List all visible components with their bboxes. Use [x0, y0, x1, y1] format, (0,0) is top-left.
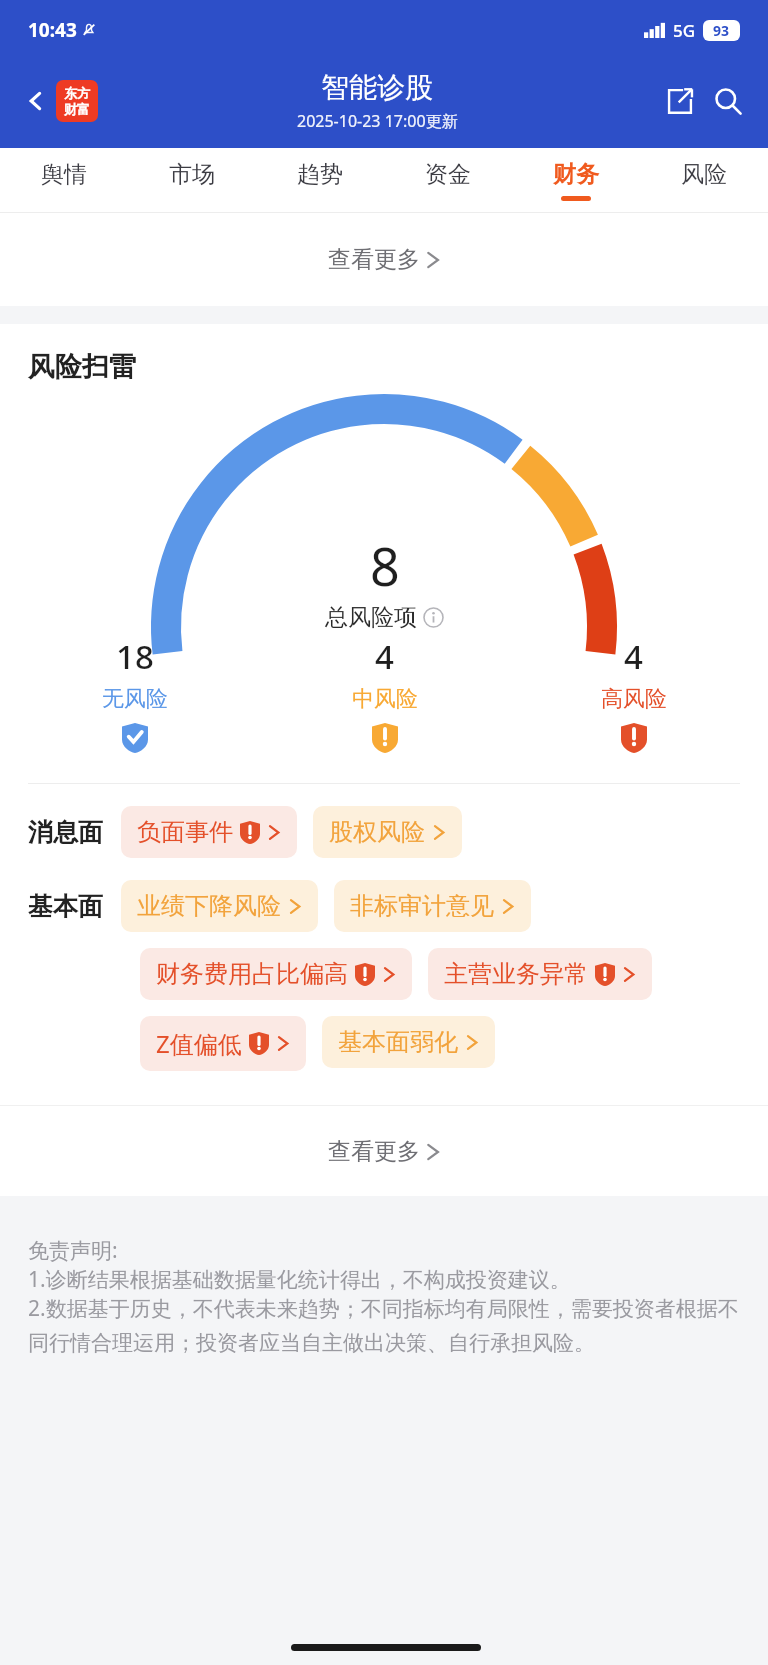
staticText: 主营业务异常 — [444, 959, 588, 989]
staticText: Z值偏低 — [156, 1027, 242, 1060]
staticText: 查看更多 — [328, 1137, 420, 1166]
staticText: 基本面 — [28, 891, 103, 922]
button[interactable]: 财务 — [512, 148, 640, 212]
staticText: 资金 — [425, 160, 471, 189]
button[interactable]: Search — [704, 77, 752, 125]
staticText: 财务 — [553, 160, 599, 189]
staticText: 10:43 — [28, 17, 77, 43]
staticText: 1.诊断结果根据基础数据量化统计得出，不构成投资建议。 — [28, 1265, 571, 1294]
button[interactable]: 主营业务异常 — [428, 948, 652, 1000]
button[interactable]: 查看更多 — [0, 1106, 768, 1196]
button[interactable]: 4 — [260, 634, 509, 753]
staticText: 股权风险 — [329, 817, 425, 847]
button[interactable]: 4 — [509, 634, 758, 753]
staticText: 财富 — [64, 101, 90, 117]
staticText: 消息面 — [28, 817, 103, 848]
button[interactable]: 基本面弱化 — [322, 1016, 495, 1068]
staticText: 智能诊股 — [321, 70, 433, 105]
staticText: 负面事件 — [137, 817, 233, 847]
staticText: 业绩下降风险 — [137, 891, 281, 921]
staticText: 2025-10-23 17:00更新 — [297, 110, 458, 132]
staticText: 舆情 — [41, 160, 87, 189]
staticText: 无风险 — [102, 685, 168, 713]
button[interactable]: 市场 — [128, 148, 256, 212]
staticText: 非标审计意见 — [350, 891, 494, 921]
staticText: 高风险 — [601, 685, 667, 713]
staticText: 8 — [370, 530, 400, 601]
staticText: 东方 — [64, 85, 90, 101]
button[interactable]: 查看更多 — [0, 213, 768, 306]
staticText: 93 — [713, 21, 730, 40]
button[interactable]: Z值偏低 — [140, 1016, 306, 1071]
staticText: 18 — [116, 634, 154, 679]
button[interactable]: 业绩下降风险 — [121, 880, 318, 932]
button[interactable]: East Money — [56, 80, 98, 122]
staticText: 风险扫雷 — [28, 350, 136, 384]
button[interactable]: 负面事件 — [121, 806, 297, 858]
button[interactable]: 股权风险 — [313, 806, 462, 858]
staticText: 免责声明: — [28, 1236, 118, 1265]
staticText: 查看更多 — [328, 245, 420, 274]
staticText: 基本面弱化 — [338, 1027, 458, 1057]
staticText: 5G — [673, 19, 696, 42]
button[interactable]: 趋势 — [256, 148, 384, 212]
staticText: 4 — [375, 634, 394, 679]
staticText: 4 — [624, 634, 643, 679]
staticText: 市场 — [169, 160, 215, 189]
button[interactable]: Back — [16, 81, 56, 121]
button[interactable]: 舆情 — [0, 148, 128, 212]
staticText: 风险 — [681, 160, 727, 189]
button[interactable]: 资金 — [384, 148, 512, 212]
button[interactable]: 非标审计意见 — [334, 880, 531, 932]
button[interactable]: 18 — [10, 634, 260, 753]
staticText: 趋势 — [297, 160, 343, 189]
button[interactable]: Share — [656, 77, 704, 125]
button[interactable]: 风险 — [640, 148, 768, 212]
staticText: 2.数据基于历史，不代表未来趋势；不同指标均有局限性，需要投资者根据不同行情合理… — [28, 1294, 744, 1357]
button[interactable]: 财务费用占比偏高 — [140, 948, 412, 1000]
staticText: 总风险项 — [325, 603, 417, 632]
staticText: 中风险 — [352, 685, 418, 713]
staticText: 财务费用占比偏高 — [156, 959, 348, 989]
